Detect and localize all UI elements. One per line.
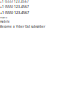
staticText: +1 (555) 123-4567: [0, 5, 29, 9]
staticText: mobile: [0, 16, 7, 19]
staticText: mobile: [0, 20, 10, 24]
staticText: +1 (555) 123-4567: [0, 10, 29, 15]
staticText: +1 (555) 123-4567: [0, 0, 29, 4]
staticText: Become a Viber Out subscriber: [0, 25, 45, 29]
